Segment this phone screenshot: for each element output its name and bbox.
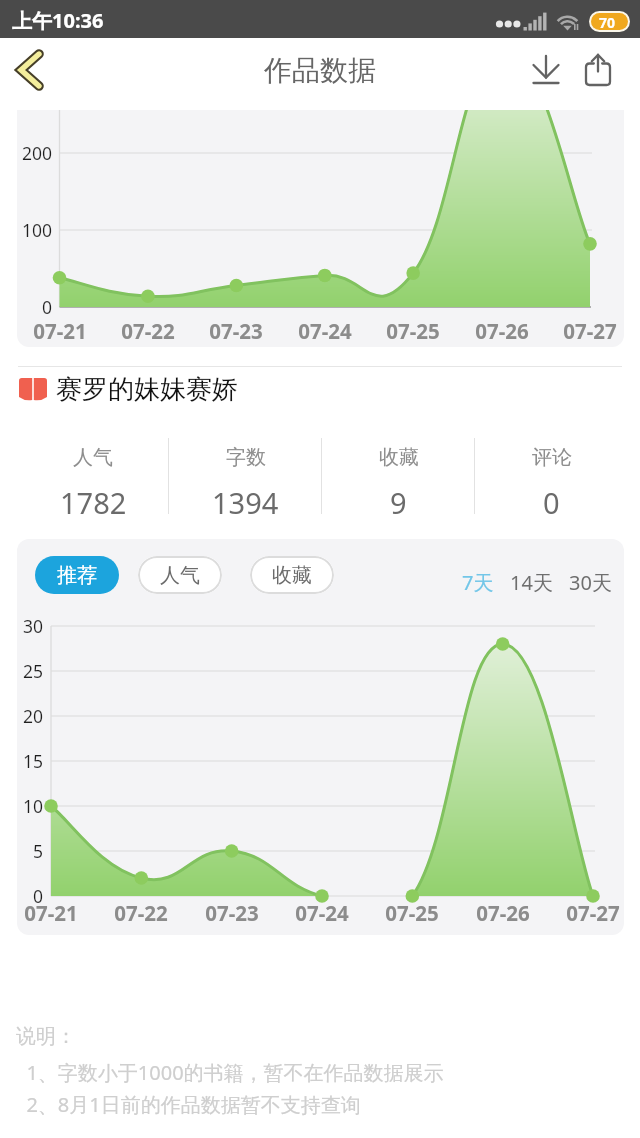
staticText: 1、字数小于1000的书籍，暂不在作品数据展示 <box>16 1059 444 1086</box>
staticText: 07-25 <box>370 899 454 927</box>
staticText: 1782 <box>60 483 127 522</box>
staticText: 2、8月1日前的作品数据暂不支持查询 <box>16 1091 361 1118</box>
staticText: 07-27 <box>548 317 624 345</box>
staticText: 人气 <box>73 445 113 470</box>
staticText: 9 <box>390 483 407 522</box>
staticText: 30天 <box>569 569 612 596</box>
staticText: 14天 <box>510 569 553 596</box>
staticText: 07-25 <box>371 317 455 345</box>
staticText: 5 <box>17 839 43 863</box>
staticText: 07-23 <box>190 899 274 927</box>
button[interactable]: 人气 <box>138 556 222 594</box>
staticText: 0 <box>543 483 560 522</box>
staticText: 07-21 <box>17 899 93 927</box>
staticText: 07-23 <box>194 317 278 345</box>
button[interactable]: 7天 <box>457 561 499 604</box>
button[interactable]: 14天 <box>505 561 558 604</box>
staticText: 说明： <box>16 1024 76 1049</box>
button[interactable]: 收藏 <box>250 556 334 594</box>
staticText: 07-24 <box>283 317 367 345</box>
button[interactable]: Back <box>2 38 58 102</box>
staticText: 07-26 <box>460 317 544 345</box>
staticText: 07-22 <box>106 317 190 345</box>
staticText: 100 <box>17 218 52 242</box>
staticText: 收藏 <box>379 445 419 470</box>
staticText: 字数 <box>226 445 266 470</box>
staticText: 20 <box>17 704 43 728</box>
staticText: 评论 <box>532 445 572 470</box>
button[interactable]: 30天 <box>564 561 617 604</box>
staticText: 10 <box>17 794 43 818</box>
staticText: 0 <box>17 884 43 908</box>
staticText: 0 <box>17 295 52 319</box>
staticText: 1394 <box>212 483 279 522</box>
staticText: 07-26 <box>461 899 545 927</box>
staticText: 收藏 <box>272 563 312 588</box>
staticText: 人气 <box>160 563 200 588</box>
button[interactable]: Download <box>520 38 572 102</box>
staticText: 07-21 <box>18 317 102 345</box>
staticText: 25 <box>17 659 43 683</box>
staticText: 07-24 <box>280 899 364 927</box>
staticText: 赛罗的妹妹赛娇 <box>56 373 238 406</box>
staticText: 7天 <box>462 569 494 596</box>
staticText: 作品数据 <box>264 53 376 88</box>
staticText: 30 <box>17 614 43 638</box>
staticText: 上午10:36 <box>12 7 104 34</box>
staticText: 70 <box>599 13 616 30</box>
staticText: 推荐 <box>57 563 97 588</box>
button[interactable]: 推荐 <box>35 556 119 594</box>
staticText: 200 <box>17 141 52 165</box>
staticText: 07-22 <box>99 899 183 927</box>
staticText: 07-27 <box>551 899 624 927</box>
button[interactable]: Share <box>572 38 624 102</box>
staticText: 15 <box>17 749 43 773</box>
